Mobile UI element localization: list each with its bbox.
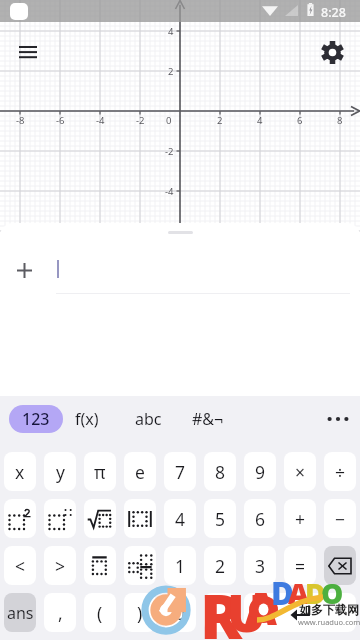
staticText: 6 [297,114,303,127]
button[interactable]: 0 [164,593,196,632]
staticText: A [245,578,277,638]
button[interactable]: 2 [204,546,236,585]
staticText: 4 [168,25,174,38]
staticText: 8 [215,460,226,484]
staticText: ans [7,602,34,624]
button[interactable]: Square root [84,499,116,538]
button[interactable]: 9 [244,452,276,491]
staticText: = [295,554,306,578]
button[interactable]: Backspace [324,546,356,585]
button[interactable] [47,248,360,293]
staticText: 如多下载网 [299,602,359,617]
staticText: A [288,573,310,612]
button[interactable]: . [204,593,236,632]
button[interactable]: x [4,452,36,491]
staticText: × [295,460,306,484]
staticText: -2 [136,114,145,127]
button[interactable]: Fraction [84,546,116,585]
staticText: www.ruaduo.com [298,617,360,627]
staticText: 2 [215,554,226,578]
button[interactable]: e [124,452,156,491]
button[interactable]: < [4,546,36,585]
button[interactable]: Absolute value [124,499,156,538]
button[interactable]: > [44,546,76,585]
staticText: -4 [165,185,174,198]
staticText: 1 [175,554,186,578]
staticText: 0 [175,601,186,625]
staticText: 123 [22,408,50,430]
button[interactable]: y [44,452,76,491]
button[interactable]: 3 [244,546,276,585]
button[interactable]: Mixed fraction [124,546,156,585]
staticText: x [15,460,25,484]
staticText: ) [137,601,143,625]
staticText: 5 [215,507,226,531]
button[interactable]: ans [4,593,36,632]
staticText: , [58,601,63,625]
staticText: R [200,573,242,640]
staticText: . [218,601,223,625]
staticText: 3 [255,554,266,578]
button[interactable]: Enter [244,593,356,632]
staticText: 9 [255,460,266,484]
staticText: 7 [175,460,186,484]
staticText: 4 [175,507,186,531]
button[interactable]: ÷ [324,452,356,491]
button[interactable]: ) [124,593,156,632]
staticText: y [56,460,65,484]
staticText: e [135,460,145,484]
staticText: ( [97,601,103,625]
button[interactable]: #&¬ [178,405,238,433]
staticText: 2 [168,65,174,78]
button[interactable]: 6 [244,499,276,538]
staticText: D [271,572,294,614]
button[interactable]: 4 [164,499,196,538]
button[interactable]: Square [4,499,36,538]
staticText: -2 [165,145,174,158]
button[interactable]: Power [44,499,76,538]
button[interactable]: Menu [4,32,52,72]
button[interactable]: Settings [312,32,352,72]
button[interactable]: Add input row [2,248,47,293]
button[interactable]: 7 [164,452,196,491]
staticText: 0 [166,114,172,127]
staticText: D [305,574,326,612]
staticText: < [15,554,26,578]
staticText: − [335,507,346,531]
staticText: ÷ [335,460,346,484]
staticText: 2 [217,114,223,127]
staticText: f(x) [75,408,99,430]
button[interactable]: − [324,499,356,538]
staticText: π [94,460,106,484]
button[interactable]: = [284,546,316,585]
button[interactable]: + [284,499,316,538]
button[interactable]: 5 [204,499,236,538]
button[interactable]: π [84,452,116,491]
staticText: U [227,576,267,640]
staticText: -6 [56,114,65,127]
button[interactable]: , [44,593,76,632]
staticText: abc [135,408,162,430]
button[interactable]: × [284,452,316,491]
staticText: 8:28 [321,4,346,21]
staticText: -8 [16,114,25,127]
staticText: 8 [337,114,343,127]
staticText: + [295,507,306,531]
button[interactable]: More options [318,399,358,439]
button[interactable]: ( [84,593,116,632]
staticText: -4 [96,114,105,127]
button[interactable]: f(x) [57,405,117,433]
staticText: #&¬ [192,408,224,430]
staticText: > [55,554,66,578]
staticText: 4 [257,114,263,127]
button[interactable]: abc [118,405,178,433]
button[interactable]: 1 [164,546,196,585]
staticText: O [321,574,344,612]
button[interactable]: 123 [9,405,63,433]
staticText: 6 [255,507,266,531]
button[interactable]: 8 [204,452,236,491]
